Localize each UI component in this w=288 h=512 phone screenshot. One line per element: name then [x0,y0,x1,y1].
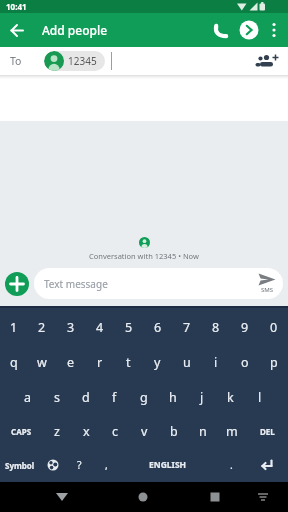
staticText: g [140,389,148,406]
staticText: c [112,423,119,440]
staticText: 0 [270,319,278,336]
staticText: b [170,423,178,440]
staticText: k [227,389,234,406]
staticText: x [83,423,90,440]
staticText: 8 [212,319,220,336]
staticText: t [126,354,131,371]
staticText: 7 [183,319,191,336]
staticText: a [24,389,32,406]
staticText: 6 [154,319,162,336]
staticText: e [67,354,75,371]
staticText: Conversation with 12345 • Now [89,251,199,261]
staticText: 4 [96,319,104,336]
staticText: w [37,354,47,371]
staticText: i [214,354,218,371]
staticText: . [230,458,233,472]
staticText: ? [77,458,82,472]
staticText: DEL [260,426,275,437]
staticText: q [10,354,18,371]
staticText: SMS [261,286,274,294]
staticText: Text message [44,277,108,291]
staticText: 3 [67,319,75,336]
staticText: Add people [42,22,108,38]
staticText: 10:41 [6,1,27,12]
staticText: o [241,354,249,371]
staticText: 9 [241,319,249,336]
staticText: s [54,389,60,406]
staticText: l [258,389,262,406]
staticText: p [270,354,278,371]
staticText: 2 [38,319,46,336]
staticText: CAPS [11,426,32,437]
staticText: m [226,423,238,440]
staticText: d [82,389,90,406]
staticText: , [105,458,108,472]
staticText: y [154,354,161,371]
staticText: To [10,54,22,68]
staticText: 12345 [68,54,97,68]
staticText: r [97,354,103,371]
staticText: z [54,423,60,440]
staticText: 5 [125,319,133,336]
staticText: j [200,389,204,406]
staticText: ENGLISH [149,459,187,471]
staticText: n [199,423,207,440]
staticText: 1 [10,319,18,336]
staticText: v [141,423,148,440]
staticText: Symbol [5,460,35,471]
staticText: u [183,354,191,371]
staticText: h [169,389,177,406]
staticText: f [112,389,117,406]
